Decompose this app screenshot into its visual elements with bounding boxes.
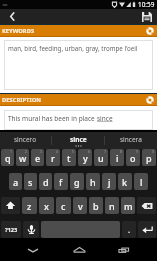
button[interactable]: since xyxy=(52,132,104,149)
staticText: k xyxy=(122,176,128,188)
staticText: t xyxy=(67,152,71,164)
staticText: This mural has been in place xyxy=(8,114,97,123)
staticText: b xyxy=(93,200,99,212)
button[interactable]: Backspace xyxy=(137,197,156,214)
staticText: a xyxy=(13,176,19,188)
button[interactable]: g xyxy=(70,173,84,190)
staticText: 0 xyxy=(152,149,155,154)
staticText: 9 xyxy=(136,149,139,154)
button[interactable]: v xyxy=(73,197,87,214)
button[interactable]: . xyxy=(122,221,136,238)
staticText: d xyxy=(43,176,49,188)
button[interactable]: Shift xyxy=(1,197,20,214)
staticText: o xyxy=(130,152,136,164)
staticText: l xyxy=(140,176,143,188)
button[interactable]: q xyxy=(1,149,14,166)
button[interactable]: m xyxy=(121,197,135,214)
button[interactable]: x xyxy=(39,197,54,214)
staticText: f xyxy=(59,176,63,188)
button[interactable]: DESCRIPTION xyxy=(0,93,157,106)
staticText: r xyxy=(51,152,55,164)
button[interactable]: This mural has been in place xyxy=(4,110,153,130)
button[interactable]: n xyxy=(105,197,119,214)
staticText: 3 xyxy=(40,149,43,154)
staticText: 8 xyxy=(120,149,123,154)
staticText: x xyxy=(44,200,49,212)
staticText: q xyxy=(5,152,11,164)
staticText: 4 xyxy=(56,149,59,154)
staticText: 5 xyxy=(72,149,75,154)
button[interactable]: y xyxy=(78,149,92,166)
button[interactable]: Voice input xyxy=(23,221,39,238)
staticText: y xyxy=(83,152,88,164)
button[interactable]: Enter xyxy=(138,221,156,238)
button[interactable]: KEYWORDS xyxy=(0,24,157,37)
button[interactable]: r xyxy=(46,149,60,166)
staticText: m xyxy=(124,200,133,212)
button[interactable]: a xyxy=(9,173,22,190)
staticText: sincero xyxy=(14,135,37,144)
staticText: z xyxy=(27,200,32,212)
staticText: w xyxy=(19,152,27,164)
button[interactable]: e xyxy=(31,149,44,166)
button[interactable]: t xyxy=(62,149,76,166)
button[interactable]: j xyxy=(102,173,116,190)
staticText: sincera xyxy=(120,135,142,144)
staticText: c xyxy=(61,200,66,212)
staticText: j xyxy=(108,176,111,188)
button[interactable]: o xyxy=(126,149,140,166)
button[interactable]: Back xyxy=(0,9,24,24)
button[interactable]: Clear xyxy=(145,95,155,105)
button[interactable]: Back xyxy=(21,238,45,261)
staticText: 7 xyxy=(104,149,107,154)
staticText: i xyxy=(116,152,119,164)
staticText: ?123 xyxy=(5,226,18,234)
staticText: g xyxy=(74,176,80,188)
button[interactable]: Save xyxy=(137,9,157,24)
button[interactable]: f xyxy=(54,173,68,190)
button[interactable]: c xyxy=(56,197,71,214)
button[interactable]: sincero xyxy=(0,132,51,149)
staticText: e xyxy=(35,152,41,164)
button[interactable]: u xyxy=(94,149,108,166)
staticText: 1 xyxy=(10,149,13,154)
button[interactable]: h xyxy=(86,173,100,190)
button[interactable]: Clear xyxy=(145,26,155,36)
button[interactable]: Home xyxy=(67,238,91,261)
staticText: u xyxy=(98,152,104,164)
staticText: 6 xyxy=(88,149,91,154)
staticText: KEYWORDS xyxy=(2,27,35,35)
button[interactable]: k xyxy=(118,173,132,190)
staticText: s xyxy=(28,176,33,188)
button[interactable]: Recents xyxy=(112,238,136,261)
button[interactable]: w xyxy=(16,149,29,166)
staticText: 10:59 xyxy=(138,0,155,9)
staticText: since xyxy=(70,135,87,144)
button[interactable]: b xyxy=(89,197,103,214)
button[interactable]: l xyxy=(134,173,148,190)
staticText: . xyxy=(128,224,131,235)
staticText: man, bird, feeding, urban, gray, trompe … xyxy=(8,44,138,52)
staticText: since xyxy=(97,114,113,123)
staticText: DESCRIPTION xyxy=(2,96,41,104)
button[interactable]: man, bird, feeding, urban, gray, trompe … xyxy=(4,40,153,90)
staticText: n xyxy=(109,200,115,212)
staticText: v xyxy=(78,200,83,212)
button[interactable]: i xyxy=(110,149,124,166)
button[interactable]: z xyxy=(22,197,37,214)
button[interactable]: sincera xyxy=(105,132,157,149)
staticText: p xyxy=(146,152,152,164)
staticText: 2 xyxy=(25,149,28,154)
button[interactable]: ?123 xyxy=(1,221,21,238)
button[interactable]: d xyxy=(39,173,52,190)
button[interactable]: p xyxy=(142,149,156,166)
button[interactable]: s xyxy=(24,173,37,190)
staticText: h xyxy=(90,176,96,188)
